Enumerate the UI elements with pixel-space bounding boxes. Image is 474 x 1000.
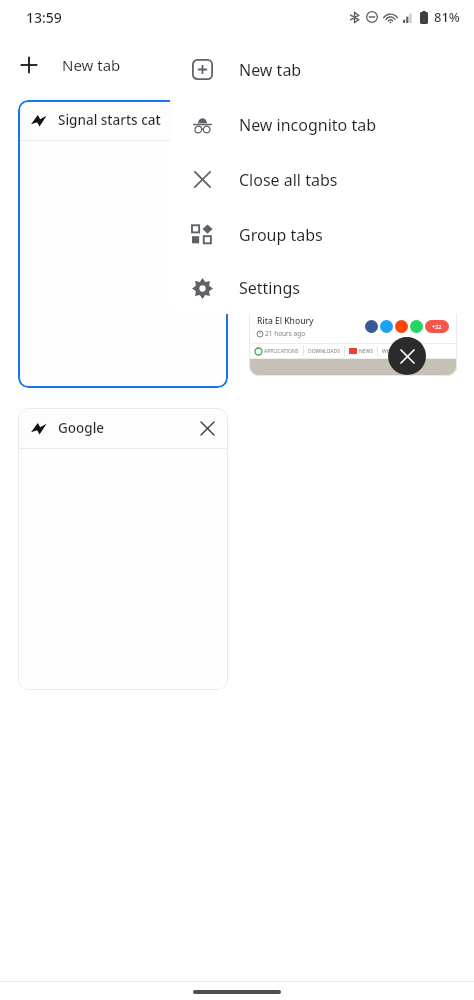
button[interactable]: Google Messages (18, 408, 228, 690)
button[interactable]: Close tab (388, 337, 426, 375)
staticText: Signal starts cat (58, 111, 161, 129)
button[interactable]: New incognito tab (170, 97, 466, 152)
staticText: DOWNLOADS (308, 348, 340, 355)
staticText: Settings (239, 277, 300, 299)
staticText: New tab (239, 59, 302, 81)
staticText: 13:59 (26, 8, 62, 27)
staticText: APPLICATIONS (264, 348, 299, 355)
button[interactable]: New tab (0, 40, 141, 90)
button[interactable]: Close all tabs (170, 152, 466, 207)
staticText: 81% (434, 8, 460, 26)
staticText: Rita El Khoury (257, 315, 314, 327)
staticText: New incognito tab (239, 114, 377, 136)
staticText: New tab (62, 55, 121, 75)
staticText: Group tabs (239, 224, 323, 246)
button[interactable]: Settings (170, 262, 466, 314)
button[interactable]: Rita El Khoury (249, 100, 457, 376)
staticText: 21 hours ago (265, 329, 306, 338)
button[interactable]: Signal starts cat (18, 100, 228, 388)
button[interactable]: New tab (170, 42, 466, 97)
staticText: WHATSAPP (382, 348, 408, 355)
staticText: Close all tabs (239, 169, 338, 191)
other: New tab (18, 54, 40, 76)
button[interactable]: Close tab (194, 415, 220, 441)
button[interactable]: Group tabs (170, 207, 466, 262)
staticText: +22 (432, 323, 442, 330)
staticText: Google Messages (58, 419, 126, 437)
staticText: NEWS (359, 348, 373, 355)
